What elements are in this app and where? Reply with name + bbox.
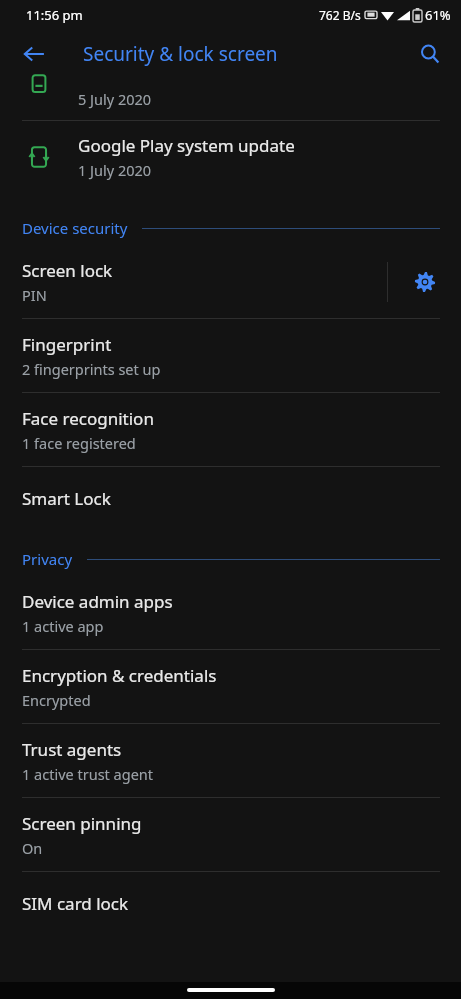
staticText: On <box>22 838 43 858</box>
button[interactable]: Device admin apps <box>0 576 461 649</box>
staticText: Google Play system update <box>78 134 295 157</box>
staticText: Face recognition <box>22 407 154 430</box>
button[interactable]: Trust agents <box>0 724 461 797</box>
button[interactable]: Face recognition <box>0 393 461 466</box>
staticText: Device security <box>22 218 128 238</box>
staticText: Trust agents <box>22 738 122 761</box>
staticText: SIM card lock <box>22 892 129 915</box>
staticText: 1 face registered <box>22 433 136 453</box>
staticText: Screen lock <box>22 259 113 282</box>
staticText: 5 July 2020 <box>78 89 152 109</box>
button[interactable]: Fingerprint <box>0 319 461 392</box>
button[interactable]: Smart Lock <box>0 467 461 530</box>
staticText: 1 July 2020 <box>78 160 152 180</box>
staticText: 61% <box>425 6 451 24</box>
button[interactable]: Screen lock settings <box>388 245 461 318</box>
staticText: Device admin apps <box>22 590 173 613</box>
staticText: Smart Lock <box>22 487 111 510</box>
staticText: 1 active trust agent <box>22 764 154 784</box>
button[interactable]: Search <box>409 33 451 75</box>
button[interactable]: Encryption & credentials <box>0 650 461 723</box>
staticText: Encryption & credentials <box>22 664 217 687</box>
button[interactable]: 5 July 2020 <box>0 83 461 120</box>
staticText: Privacy <box>22 549 73 569</box>
staticText: Fingerprint <box>22 333 112 356</box>
button[interactable]: Screen pinning <box>0 798 461 871</box>
staticText: 1 active app <box>22 616 104 636</box>
staticText: 762 B/s <box>319 7 361 23</box>
button[interactable]: Screen lock <box>0 245 387 318</box>
staticText: Encrypted <box>22 690 91 710</box>
button[interactable]: SIM card lock <box>0 872 461 935</box>
staticText: 2 fingerprints set up <box>22 359 161 379</box>
staticText: Screen pinning <box>22 812 142 835</box>
button[interactable]: Google Play system update <box>0 121 461 193</box>
staticText: 11:56 pm <box>26 6 83 24</box>
staticText: PIN <box>22 285 47 305</box>
button[interactable]: Back <box>12 32 56 76</box>
staticText: Security & lock screen <box>83 41 278 67</box>
